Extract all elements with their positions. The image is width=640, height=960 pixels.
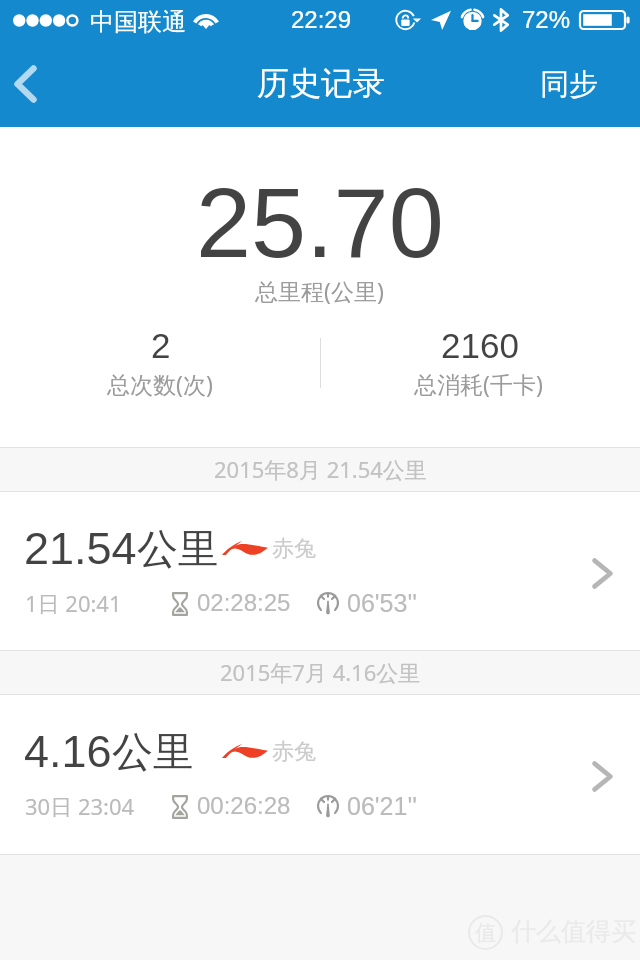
staticText: 02:28:25 bbox=[197, 589, 291, 616]
button[interactable]: 同步 bbox=[516, 40, 640, 127]
button[interactable]: Back bbox=[0, 40, 70, 127]
staticText: 22:29 bbox=[291, 6, 352, 33]
staticText: 中国联通 bbox=[90, 7, 186, 37]
staticText: 2 bbox=[151, 326, 171, 365]
staticText: 2160 bbox=[441, 326, 519, 365]
staticText: 06'21'' bbox=[347, 792, 417, 820]
button[interactable]: 4.16 bbox=[0, 695, 640, 854]
staticText: 2015年8月 21.54公里 bbox=[214, 454, 427, 484]
staticText: 什么值得买 bbox=[511, 916, 636, 947]
staticText: 赤兔 bbox=[272, 738, 316, 766]
staticText: 72% bbox=[522, 6, 571, 33]
staticText: 公里 bbox=[137, 524, 219, 576]
staticText: 值 bbox=[475, 920, 496, 946]
staticText: 25.70 bbox=[196, 167, 444, 278]
staticText: 公里 bbox=[112, 727, 194, 779]
staticText: 21.54 bbox=[24, 523, 137, 573]
staticText: 总消耗(千卡) bbox=[414, 368, 543, 399]
staticText: 赤兔 bbox=[272, 535, 316, 563]
staticText: 4.16 bbox=[24, 726, 112, 776]
staticText: 总里程(公里) bbox=[255, 275, 384, 306]
staticText: 1日 20:41 bbox=[25, 588, 122, 618]
staticText: 总次数(次) bbox=[107, 368, 213, 399]
button[interactable]: 21.54 bbox=[0, 492, 640, 650]
staticText: 06'53'' bbox=[347, 589, 417, 617]
staticText: 2015年7月 4.16公里 bbox=[220, 657, 421, 687]
staticText: 30日 23:04 bbox=[25, 791, 135, 821]
staticText: 同步 bbox=[540, 66, 598, 103]
staticText: 00:26:28 bbox=[197, 792, 291, 819]
staticText: 历史记录 bbox=[257, 63, 385, 103]
